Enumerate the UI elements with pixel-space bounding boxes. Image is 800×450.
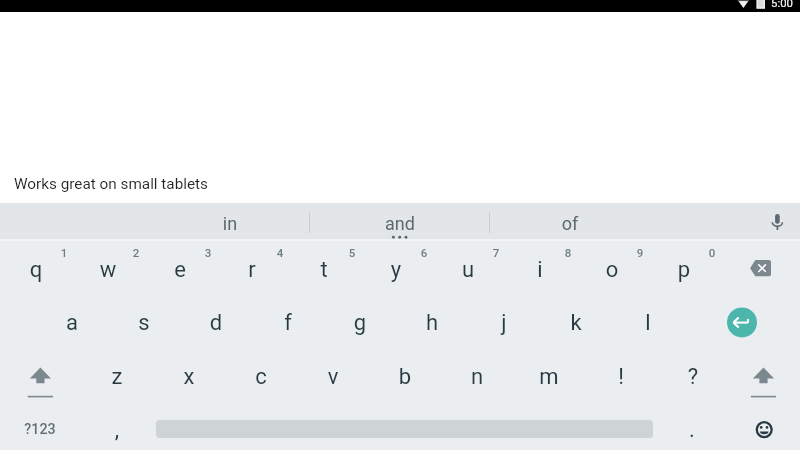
button[interactable]: [153, 349, 225, 403]
button[interactable]: [145, 203, 310, 239]
button[interactable]: [108, 295, 180, 349]
button[interactable]: [310, 203, 490, 239]
staticText: h: [312, 310, 552, 341]
staticText: a: [0, 310, 192, 341]
button[interactable]: [396, 295, 468, 349]
button[interactable]: Voice input: [759, 203, 795, 239]
button[interactable]: [369, 349, 441, 403]
button[interactable]: [252, 295, 324, 349]
button[interactable]: [288, 241, 360, 295]
staticText: t: [204, 257, 444, 288]
button[interactable]: [585, 349, 657, 403]
button[interactable]: [81, 349, 153, 403]
staticText: s: [24, 310, 264, 341]
staticText: i: [420, 257, 660, 288]
staticText: 3: [88, 246, 328, 262]
button[interactable]: [0, 403, 81, 450]
staticText: 2: [16, 246, 256, 262]
button[interactable]: [612, 295, 684, 349]
staticText: q: [0, 257, 156, 288]
staticText: 0: [592, 246, 800, 262]
button[interactable]: Enter: [684, 295, 800, 349]
staticText: ,: [0, 417, 237, 448]
staticText: of: [450, 213, 690, 238]
button[interactable]: [504, 241, 576, 295]
staticText: d: [96, 310, 336, 341]
button[interactable]: [540, 295, 612, 349]
staticText: 6: [304, 246, 544, 262]
staticText: Works great on small tablets: [0, 175, 231, 196]
button[interactable]: [513, 349, 585, 403]
button[interactable]: [657, 403, 729, 450]
staticText: r: [132, 257, 372, 288]
staticText: g: [240, 310, 480, 341]
button[interactable]: [657, 349, 729, 403]
staticText: w: [0, 257, 228, 288]
staticText: x: [69, 364, 309, 395]
staticText: 7: [376, 246, 616, 262]
staticText: p: [564, 257, 800, 288]
staticText: ?123: [0, 421, 160, 441]
button[interactable]: [468, 295, 540, 349]
button[interactable]: [180, 295, 252, 349]
staticText: f: [168, 310, 408, 341]
staticText: c: [141, 364, 381, 395]
staticText: 5: [232, 246, 472, 262]
staticText: ?: [573, 364, 800, 395]
staticText: z: [0, 364, 237, 395]
staticText: 4: [160, 246, 400, 262]
staticText: and: [280, 213, 520, 238]
button[interactable]: [297, 349, 369, 403]
button[interactable]: [72, 241, 144, 295]
staticText: o: [492, 257, 732, 288]
button[interactable]: Shift: [0, 349, 81, 403]
button[interactable]: [225, 349, 297, 403]
button[interactable]: Space: [153, 403, 657, 450]
staticText: e: [60, 257, 300, 288]
button[interactable]: [216, 241, 288, 295]
staticText: in: [110, 213, 350, 238]
staticText: !: [501, 364, 741, 395]
staticText: 1: [0, 246, 184, 262]
button[interactable]: [441, 349, 513, 403]
staticText: u: [348, 257, 588, 288]
button[interactable]: [324, 295, 396, 349]
button[interactable]: [144, 241, 216, 295]
staticText: j: [384, 310, 624, 341]
button[interactable]: [432, 241, 504, 295]
button[interactable]: [648, 241, 720, 295]
staticText: k: [456, 310, 696, 341]
staticText: 9: [520, 246, 760, 262]
staticText: v: [213, 364, 453, 395]
staticText: .: [572, 417, 800, 448]
button[interactable]: Emoji: [729, 403, 800, 450]
button[interactable]: Backspace: [720, 241, 800, 295]
staticText: 5:00: [662, 0, 800, 8]
button[interactable]: [0, 241, 72, 295]
staticText: b: [285, 364, 525, 395]
button[interactable]: [576, 241, 648, 295]
button[interactable]: [360, 241, 432, 295]
button[interactable]: [36, 295, 108, 349]
button[interactable]: Shift: [729, 349, 800, 403]
button[interactable]: [490, 203, 655, 239]
staticText: y: [276, 257, 516, 288]
staticText: 8: [448, 246, 688, 262]
staticText: l: [528, 310, 768, 341]
staticText: m: [429, 364, 669, 395]
button[interactable]: [81, 403, 153, 450]
staticText: n: [357, 364, 597, 395]
